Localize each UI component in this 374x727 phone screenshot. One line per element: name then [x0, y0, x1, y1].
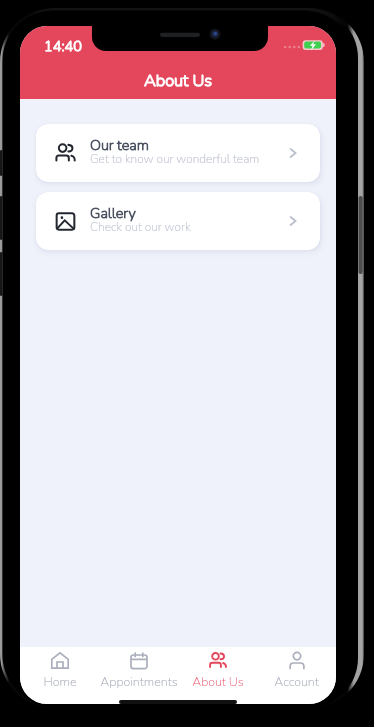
button[interactable]: Home — [20, 647, 99, 704]
staticText: Get to know our wonderful team — [90, 151, 260, 167]
staticText: Gallery — [90, 203, 136, 223]
staticText: Our team — [90, 135, 149, 155]
staticText: 14:40 — [44, 36, 82, 56]
staticText: About Us — [144, 69, 213, 92]
staticText: About Us — [144, 69, 213, 92]
staticText: Home — [43, 673, 77, 690]
staticText: Account — [274, 673, 319, 690]
button[interactable]: About Us — [178, 647, 257, 704]
staticText: About Us — [192, 673, 244, 690]
button[interactable]: Appointments — [99, 647, 178, 704]
button[interactable]: Account — [257, 647, 336, 704]
staticText: Our team — [90, 135, 149, 155]
button[interactable]: Our team — [36, 124, 320, 182]
button[interactable]: Gallery — [36, 192, 320, 250]
staticText: Appointments — [100, 673, 178, 690]
staticText: 14:40 — [44, 36, 82, 56]
staticText: Gallery — [90, 203, 136, 223]
staticText: Check out our work — [90, 219, 191, 235]
